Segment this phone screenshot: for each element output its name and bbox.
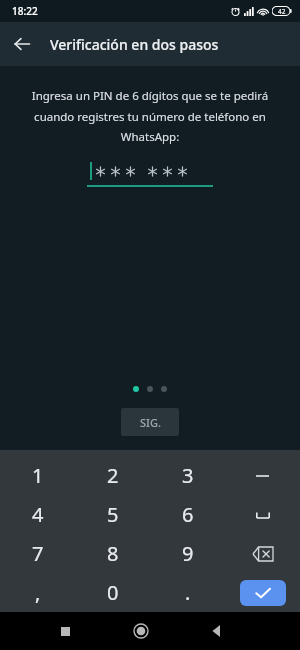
- staticText: 5: [107, 501, 119, 528]
- staticText: 7: [32, 540, 44, 567]
- button[interactable]: 0: [75, 573, 150, 612]
- button[interactable]: Home: [121, 612, 161, 650]
- staticText: 8: [107, 540, 119, 567]
- button[interactable]: Dash: [225, 456, 300, 495]
- staticText: .: [185, 579, 191, 606]
- button[interactable]: 8: [75, 534, 150, 573]
- staticText: 2: [107, 462, 119, 489]
- staticText: SIG.: [140, 415, 161, 430]
- button[interactable]: 9: [150, 534, 225, 573]
- button[interactable]: 7: [0, 534, 75, 573]
- staticText: 1: [32, 462, 44, 489]
- button[interactable]: Backspace: [225, 534, 300, 573]
- staticText: 3: [182, 462, 194, 489]
- button[interactable]: 3: [150, 456, 225, 495]
- button[interactable]: Recent apps: [45, 612, 85, 650]
- button[interactable]: SIG.: [121, 408, 179, 436]
- button[interactable]: 5: [75, 495, 150, 534]
- button[interactable]: Back: [0, 22, 44, 66]
- button[interactable]: Back: [197, 612, 237, 650]
- staticText: 18:22: [12, 4, 38, 18]
- button[interactable]: 4: [0, 495, 75, 534]
- staticText: 42: [278, 7, 286, 16]
- staticText: 0: [107, 579, 119, 606]
- staticText: 6: [182, 501, 194, 528]
- button[interactable]: ,: [0, 573, 75, 612]
- button[interactable]: Space: [225, 495, 300, 534]
- button[interactable]: .: [150, 573, 225, 612]
- button[interactable]: 2: [75, 456, 150, 495]
- staticText: 9: [182, 540, 194, 567]
- staticText: Verificación en dos pasos: [50, 35, 219, 54]
- button[interactable]: Enter: [225, 573, 300, 612]
- staticText: ,: [35, 579, 41, 606]
- staticText: 4: [32, 501, 44, 528]
- button[interactable]: 6: [150, 495, 225, 534]
- button[interactable]: 1: [0, 456, 75, 495]
- staticText: Ingresa un PIN de 6 dígitos que se te pe…: [30, 88, 270, 144]
